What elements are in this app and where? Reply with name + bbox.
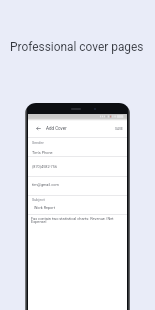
button[interactable]: Add Cover xyxy=(46,126,67,131)
staticText: Sender xyxy=(32,140,44,144)
staticText: Fax contain two statistical charts: Reve… xyxy=(31,216,119,224)
staticText: Tim's Phone xyxy=(32,150,53,154)
button[interactable]: Back xyxy=(36,126,41,131)
button[interactable]: (870)4582-756 xyxy=(32,164,58,168)
button[interactable]: Work Report xyxy=(34,205,55,209)
staticText: Work Report xyxy=(34,205,55,209)
button[interactable]: Tim's Phone xyxy=(32,150,53,154)
button[interactable]: SAVE xyxy=(115,127,123,131)
button[interactable]: Fax contain two statistical charts: Reve… xyxy=(31,216,119,224)
staticText: SAVE xyxy=(115,127,123,131)
staticText: Subject xyxy=(32,197,45,201)
button[interactable]: tim@gmail.com xyxy=(32,182,59,186)
button[interactable] xyxy=(28,120,127,137)
staticText: (870)4582-756 xyxy=(32,164,58,168)
staticText: tim@gmail.com xyxy=(32,182,59,186)
staticText: Professional cover pages xyxy=(10,40,144,54)
staticText: Add Cover xyxy=(46,126,67,131)
